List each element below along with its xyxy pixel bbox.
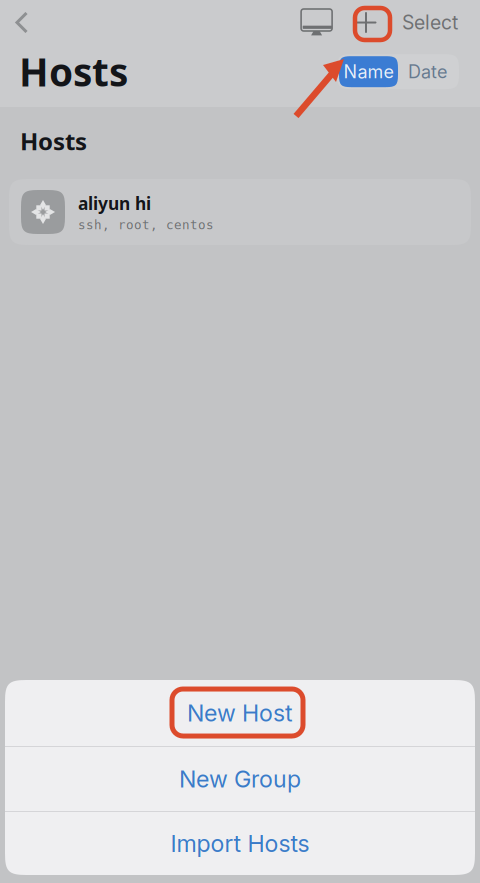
staticText: Select <box>402 11 458 34</box>
staticText: Hosts <box>20 125 87 157</box>
staticText: aliyun hi <box>78 192 151 215</box>
button[interactable]: aliyun hi <box>0 179 480 245</box>
button[interactable]: Back <box>0 0 60 44</box>
staticText: New Host <box>187 699 293 727</box>
staticText: Name <box>343 61 393 83</box>
staticText: New Group <box>179 765 301 793</box>
button[interactable]: New Group <box>5 747 475 811</box>
button[interactable]: Import Hosts <box>5 812 475 875</box>
button[interactable]: Select <box>402 0 458 44</box>
button[interactable]: Name <box>339 56 398 87</box>
button[interactable]: Display <box>299 0 335 44</box>
button[interactable]: New Host <box>5 680 475 746</box>
staticText: Import Hosts <box>170 829 309 858</box>
button[interactable]: Date <box>398 56 457 87</box>
staticText: Hosts <box>19 46 128 97</box>
button[interactable]: Add host <box>356 0 376 44</box>
staticText: ssh, root, centos <box>78 218 214 232</box>
staticText: Date <box>408 61 447 83</box>
